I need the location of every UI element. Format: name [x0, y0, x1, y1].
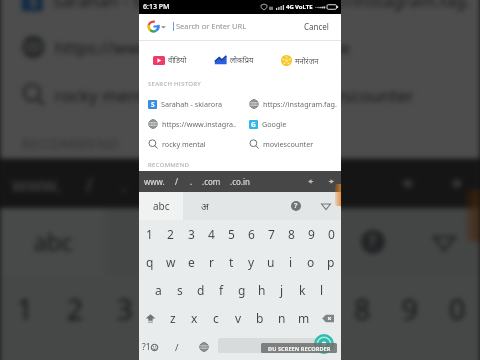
button[interactable]: t: [195, 341, 242, 360]
button[interactable]: w: [160, 248, 181, 276]
button[interactable]: y: [242, 341, 290, 360]
button[interactable]: Next suggestion: [326, 176, 337, 187]
button[interactable]: अ: [183, 192, 227, 220]
button[interactable]: G: [240, 23, 480, 71]
button[interactable]: 7: [290, 275, 337, 341]
button[interactable]: 1: [0, 275, 50, 341]
button[interactable]: 0: [432, 275, 480, 341]
button[interactable]: DU Recorder: [314, 334, 334, 354]
button[interactable]: b: [249, 304, 271, 332]
button[interactable]: 6: [242, 275, 290, 341]
button[interactable]: 5: [195, 275, 242, 341]
button[interactable]: Change language: [193, 332, 214, 360]
button[interactable]: k: [292, 276, 312, 304]
button[interactable]: G: [240, 114, 341, 134]
button[interactable]: abc: [0, 208, 105, 275]
button[interactable]: 9: [301, 220, 321, 248]
button[interactable]: Next suggestion: [444, 170, 470, 197]
button[interactable]: 2: [160, 220, 181, 248]
button[interactable]: Floating assistant: [335, 184, 341, 206]
button[interactable]: .com: [143, 163, 207, 204]
button[interactable]: n: [271, 304, 293, 332]
button[interactable]: moviescounter: [240, 134, 341, 154]
button[interactable]: S: [139, 94, 240, 114]
button[interactable]: .: [185, 173, 199, 190]
button[interactable]: r: [201, 248, 221, 276]
button[interactable]: 8: [337, 275, 385, 341]
button[interactable]: मनोरंजन: [281, 53, 319, 68]
button[interactable]: q: [139, 248, 160, 276]
button[interactable]: Previous suggestion: [305, 176, 316, 187]
button[interactable]: a: [148, 276, 169, 304]
button[interactable]: 4: [147, 275, 195, 341]
button[interactable]: s: [169, 276, 190, 304]
button[interactable]: https://instagram.fag…: [240, 0, 480, 23]
button[interactable]: Search engine: Google: [146, 19, 168, 34]
button[interactable]: rocky mental: [139, 134, 240, 154]
button[interactable]: rocky mental: [0, 71, 240, 118]
button[interactable]: q: [0, 341, 50, 360]
button[interactable]: 0: [321, 220, 341, 248]
button[interactable]: Help: [286, 196, 306, 216]
button[interactable]: 3: [100, 275, 147, 341]
button[interactable]: o: [301, 248, 321, 276]
button[interactable]: 3: [181, 220, 201, 248]
button[interactable]: 2: [50, 275, 100, 341]
button[interactable]: वीडियो: [153, 53, 187, 67]
button[interactable]: 7: [261, 220, 281, 248]
button[interactable]: S: [0, 0, 240, 23]
button[interactable]: m: [293, 304, 315, 332]
button[interactable]: https://www.instagra…: [139, 114, 240, 134]
button[interactable]: j: [272, 276, 292, 304]
button[interactable]: r: [147, 341, 195, 360]
button[interactable]: i: [281, 248, 301, 276]
button[interactable]: u: [290, 341, 337, 360]
button[interactable]: c: [205, 304, 227, 332]
button[interactable]: g: [232, 276, 252, 304]
button[interactable]: Previous suggestion: [394, 170, 420, 197]
button[interactable]: www.: [142, 173, 171, 190]
button[interactable]: 5: [221, 220, 241, 248]
button[interactable]: लोकप्रिय: [214, 53, 254, 67]
button[interactable]: Floating assistant: [466, 189, 480, 242]
button[interactable]: h: [252, 276, 272, 304]
button[interactable]: Help: [349, 218, 397, 265]
button[interactable]: 1: [139, 220, 160, 248]
button[interactable]: e: [181, 248, 201, 276]
button[interactable]: Backspace: [315, 304, 341, 332]
button[interactable]: 4: [201, 220, 221, 248]
button[interactable]: https://instagram.fag…: [240, 94, 341, 114]
button[interactable]: y: [241, 248, 261, 276]
button[interactable]: z: [162, 304, 183, 332]
button[interactable]: https://www.instagra…: [0, 23, 240, 71]
button[interactable]: Cancel: [296, 14, 341, 38]
button[interactable]: 6: [241, 220, 261, 248]
button[interactable]: Shift: [139, 304, 162, 332]
button[interactable]: t: [221, 248, 241, 276]
button[interactable]: Hide keyboard: [316, 196, 336, 216]
button[interactable]: e: [100, 341, 147, 360]
button[interactable]: x: [183, 304, 205, 332]
button[interactable]: www.: [7, 163, 76, 204]
button[interactable]: .co.in: [226, 173, 254, 190]
button[interactable]: u: [261, 248, 281, 276]
button[interactable]: .com: [199, 173, 226, 190]
button[interactable]: .co.in: [207, 163, 273, 204]
button[interactable]: /: [171, 173, 185, 190]
button[interactable]: p: [321, 248, 341, 276]
button[interactable]: Search or Enter URL: [173, 14, 296, 38]
button[interactable]: abc: [139, 192, 183, 220]
button[interactable]: i: [337, 341, 385, 360]
button[interactable]: 9: [385, 275, 432, 341]
button[interactable]: moviescounter: [240, 71, 480, 118]
button[interactable]: अ: [105, 208, 209, 275]
button[interactable]: /: [161, 332, 193, 360]
button[interactable]: 8: [281, 220, 301, 248]
button[interactable]: d: [190, 276, 211, 304]
button[interactable]: Space: [218, 338, 327, 353]
button[interactable]: f: [211, 276, 232, 304]
button[interactable]: v: [227, 304, 249, 332]
